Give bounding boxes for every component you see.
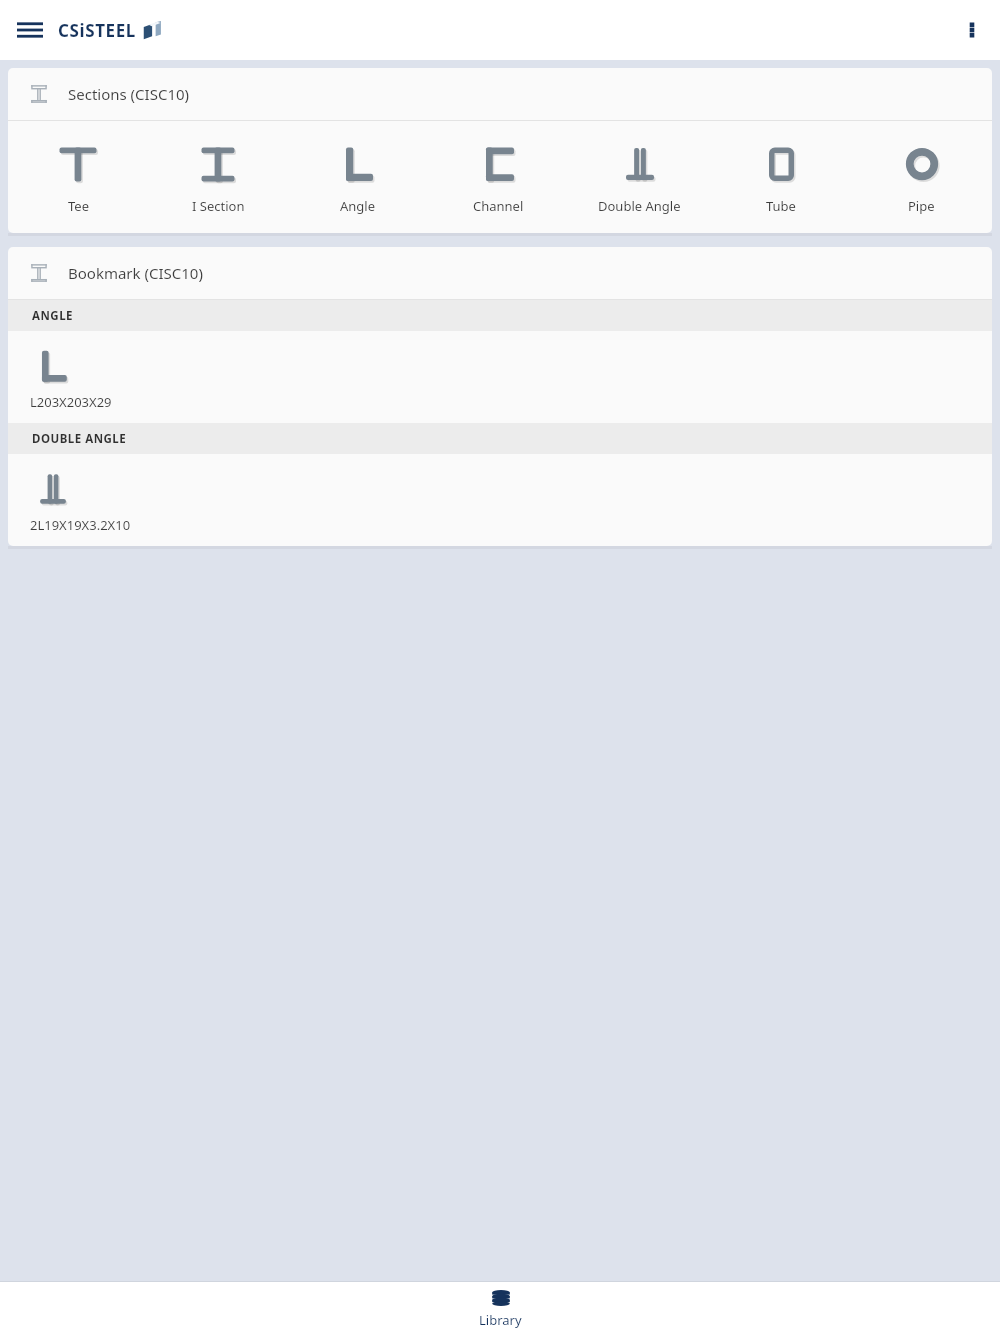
staticText: 2L19X19X3.2X10 [30,516,131,534]
button[interactable]: I Section [148,133,288,221]
staticText: Angle [340,197,376,215]
staticText: L203X203X29 [30,393,112,411]
staticText: Tube [766,197,796,215]
staticText: CSiSTEEL [58,19,136,42]
button[interactable]: Angle [288,133,428,221]
staticText: Sections (CISC10) [68,84,190,104]
button[interactable]: Library [451,1283,550,1333]
button[interactable]: Pipe [851,133,992,221]
staticText: DOUBLE ANGLE [32,431,127,447]
button[interactable]: L203X203X29 [8,331,992,423]
button[interactable]: Bookmark (CISC10) [8,247,992,299]
button[interactable]: Sections (CISC10) [8,68,992,120]
button[interactable]: Open navigation menu [8,8,52,52]
staticText: ANGLE [32,308,74,324]
button[interactable]: Double Angle [569,133,710,221]
button[interactable]: 2L19X19X3.2X10 [8,454,992,546]
button[interactable]: More options [950,8,994,52]
staticText: I Section [192,197,245,215]
button[interactable]: Tee [8,133,148,221]
button[interactable]: Tube [710,133,851,221]
staticText: Double Angle [598,197,681,215]
staticText: Bookmark (CISC10) [68,263,203,283]
staticText: Pipe [908,197,935,215]
button[interactable]: Channel [428,133,569,221]
staticText: Channel [473,197,524,215]
staticText: Library [479,1311,522,1329]
staticText: Tee [68,197,89,215]
